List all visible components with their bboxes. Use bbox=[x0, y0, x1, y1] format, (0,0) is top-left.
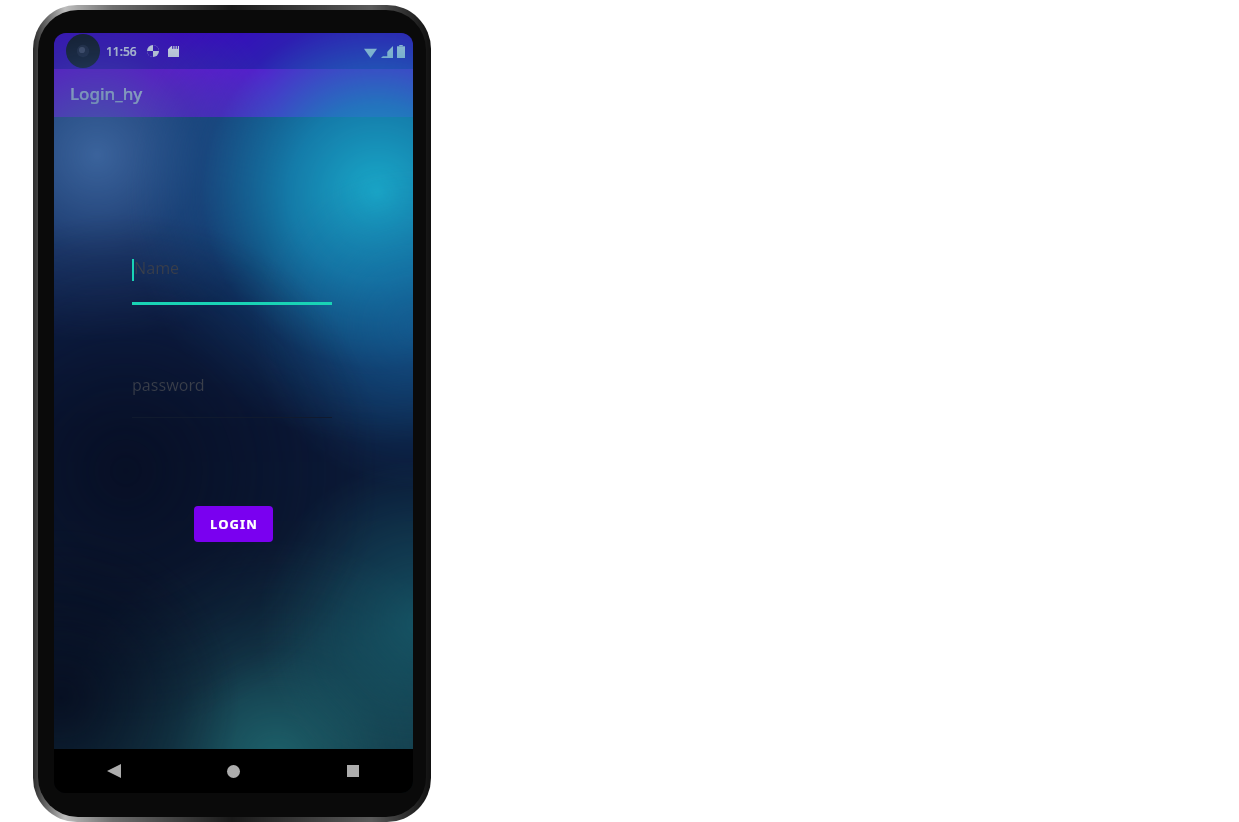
button[interactable]: Home bbox=[173, 749, 293, 793]
staticText: Name bbox=[134, 257, 180, 279]
staticText: LOGIN bbox=[210, 515, 258, 533]
button[interactable]: Recent apps bbox=[293, 749, 413, 793]
button[interactable]: LOGIN bbox=[194, 506, 273, 542]
staticText: Login_hy bbox=[70, 82, 143, 105]
button[interactable]: Back bbox=[54, 749, 173, 793]
button[interactable]: password bbox=[132, 374, 332, 418]
button[interactable]: Name bbox=[132, 257, 332, 305]
staticText: 11:56 bbox=[106, 43, 137, 59]
staticText: password bbox=[132, 374, 205, 396]
